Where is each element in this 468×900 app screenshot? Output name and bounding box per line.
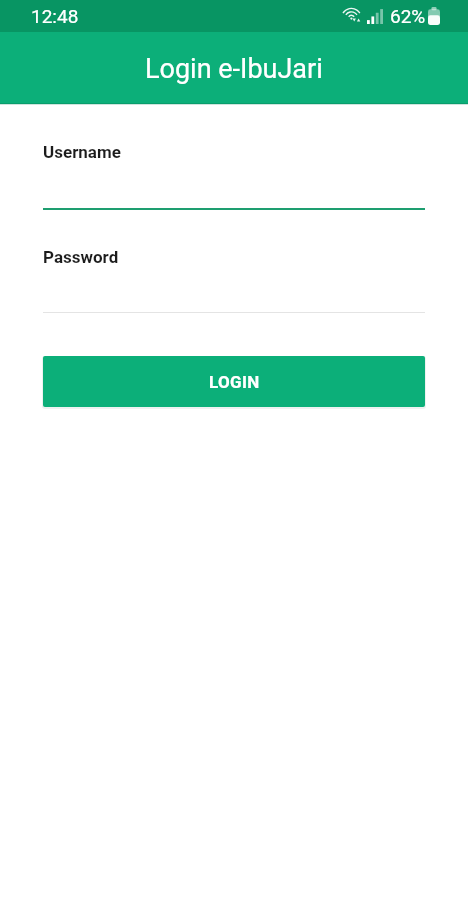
- other: Mobile signal: [367, 9, 383, 24]
- staticText: 12:48: [31, 5, 79, 27]
- other: Battery: [428, 7, 440, 25]
- staticText: 62%: [390, 5, 426, 27]
- other: Wi-Fi: [343, 7, 363, 23]
- button[interactable]: Username: [43, 138, 425, 210]
- staticText: Password: [43, 247, 119, 267]
- button[interactable]: LOGIN: [43, 356, 425, 407]
- staticText: LOGIN: [209, 372, 260, 392]
- staticText: Login e-IbuJari: [145, 53, 323, 85]
- staticText: Username: [43, 142, 121, 162]
- button[interactable]: Password: [43, 243, 425, 313]
